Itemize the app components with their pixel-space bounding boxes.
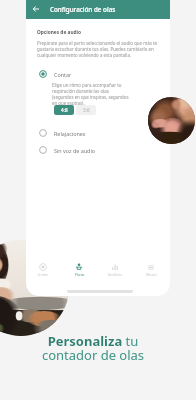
button[interactable]: Back [30, 3, 41, 14]
staticText: Personaliza tu contador de olas [0, 332, 191, 364]
button[interactable]: 4:8 [54, 105, 74, 115]
staticText: 3:6 [83, 107, 90, 113]
staticText: Sin voz de audio [54, 147, 96, 154]
staticText: Análisis [108, 272, 122, 277]
staticText: Opciones de audio [37, 29, 81, 36]
staticText: Prepárate para el parto seleccionando el… [37, 40, 160, 58]
staticText: Menú [146, 272, 157, 277]
button[interactable]: Flota [61, 254, 97, 277]
button[interactable]: 3:6 [76, 105, 96, 115]
button[interactable]: Sin voz de audio [39, 145, 157, 155]
button[interactable]: Contar [39, 69, 157, 79]
staticText: Relajaciones [54, 130, 86, 137]
staticText: Contar [54, 71, 72, 78]
staticText: Inicio [38, 272, 48, 277]
button[interactable]: Relajaciones [39, 128, 157, 138]
button[interactable]: Menú [133, 254, 169, 277]
staticText: Elige un ritmo para acompañar tu respira… [52, 82, 131, 106]
staticText: Flota [75, 272, 84, 277]
staticText: 4:8 [61, 107, 68, 113]
button[interactable]: Análisis [97, 254, 133, 277]
staticText: Configuración de olas [50, 5, 116, 14]
button[interactable]: Inicio [26, 254, 61, 277]
